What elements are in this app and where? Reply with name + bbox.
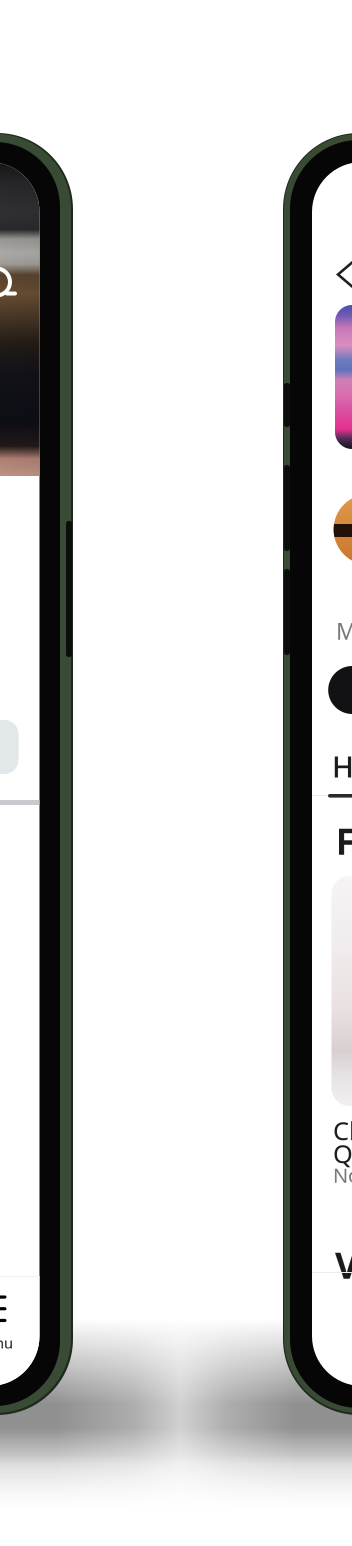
button[interactable]: Back: [326, 248, 352, 301]
staticText: Quiet Hour: [333, 1137, 352, 1170]
staticText: Featured: [335, 817, 352, 865]
button[interactable]: Home: [332, 751, 352, 781]
staticText: Nov 14 · 8 min: [333, 1162, 352, 1188]
button[interactable]: Search: [0, 255, 13, 299]
staticText: Chasing the: [333, 1114, 352, 1147]
staticText: Home: [332, 746, 352, 785]
button[interactable]: Follow: [328, 666, 352, 714]
staticText: Viewed: [335, 1241, 352, 1289]
button[interactable]: Menu: [0, 1288, 29, 1360]
staticText: Mountain View: [336, 616, 352, 646]
staticText: Menu: [0, 1333, 13, 1353]
